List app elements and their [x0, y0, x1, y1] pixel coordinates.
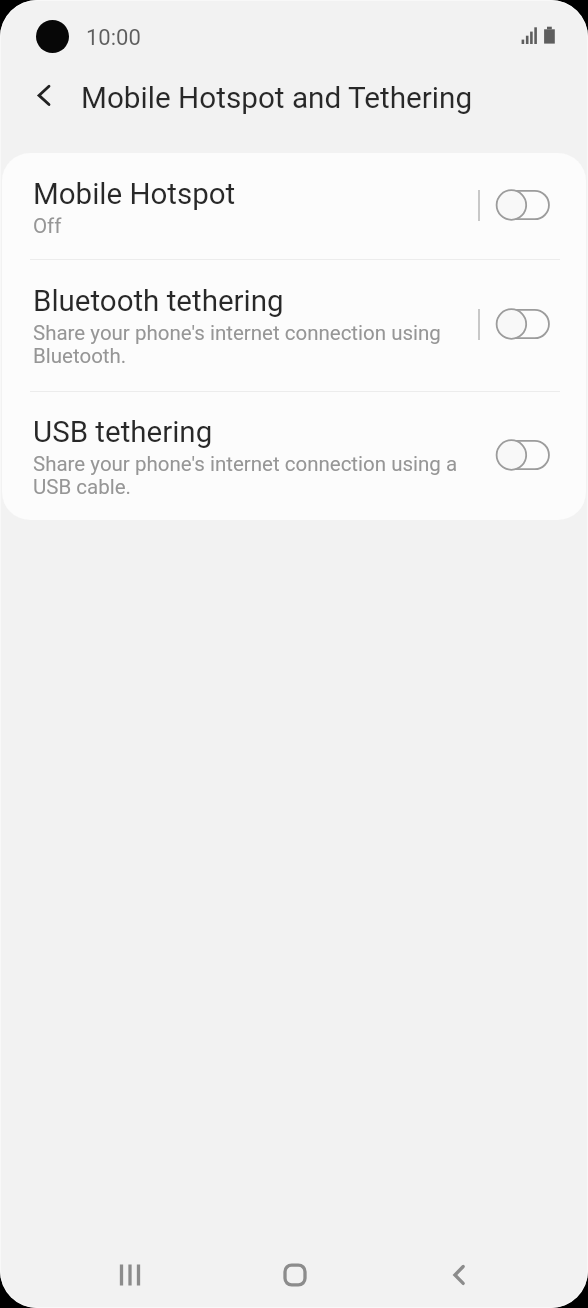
staticText: Mobile Hotspot: [33, 177, 236, 212]
button[interactable]: Recent apps: [87, 1232, 173, 1308]
staticText: Mobile Hotspot and Tethering: [81, 80, 473, 115]
button[interactable]: Mobile Hotspot switch, off: [490, 184, 556, 226]
button[interactable]: USB tethering switch, off: [490, 434, 556, 476]
button[interactable]: Bluetooth tethering switch, off: [490, 303, 556, 345]
button[interactable]: Mobile Hotspot: [2, 153, 586, 259]
staticText: USB tethering: [33, 415, 213, 450]
button[interactable]: Home: [252, 1232, 338, 1308]
staticText: Bluetooth tethering: [33, 284, 284, 319]
button[interactable]: USB tethering: [2, 391, 586, 520]
button[interactable]: Bluetooth tethering: [2, 259, 586, 391]
staticText: Share your phone's internet connection u…: [33, 452, 458, 499]
staticText: Off: [33, 214, 62, 238]
button[interactable]: Navigate up: [8, 65, 70, 127]
staticText: 10:00: [86, 25, 141, 51]
staticText: Share your phone's internet connection u…: [33, 321, 458, 368]
button[interactable]: Back: [416, 1232, 502, 1308]
